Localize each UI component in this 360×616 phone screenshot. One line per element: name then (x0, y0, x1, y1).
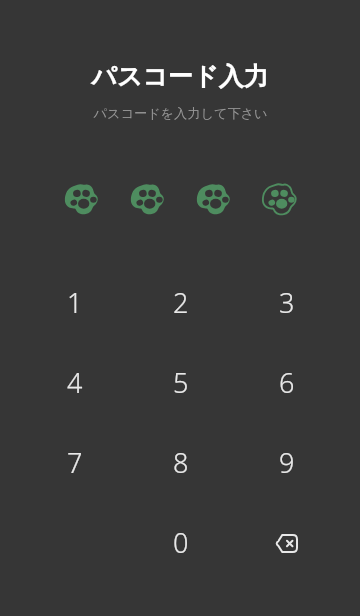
button[interactable]: Delete (234, 502, 340, 582)
staticText: 1 (67, 284, 83, 321)
button[interactable]: 7 (21, 422, 128, 502)
button[interactable]: 1 (21, 262, 128, 342)
button[interactable]: 3 (234, 262, 340, 342)
staticText: 0 (173, 524, 189, 561)
staticText: 7 (67, 444, 83, 481)
staticText: 4 (67, 364, 83, 401)
staticText: パスコード入力 (91, 61, 269, 92)
staticText: 2 (173, 284, 189, 321)
button[interactable]: 6 (234, 342, 340, 422)
button[interactable]: 8 (128, 422, 234, 502)
button[interactable]: 9 (234, 422, 340, 502)
staticText: 9 (279, 444, 295, 481)
staticText: 8 (173, 444, 189, 481)
button[interactable]: 2 (128, 262, 234, 342)
staticText: 6 (279, 364, 295, 401)
button[interactable]: 4 (21, 342, 128, 422)
staticText: 5 (173, 364, 189, 401)
staticText: 3 (279, 284, 295, 321)
button[interactable]: 0 (128, 502, 234, 582)
staticText: パスコードを入力して下さい (93, 105, 268, 122)
button[interactable]: 5 (128, 342, 234, 422)
